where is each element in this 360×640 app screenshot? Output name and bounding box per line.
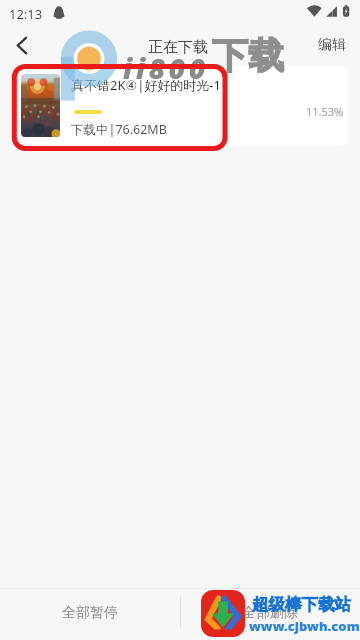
staticText: 编辑 [318,36,346,54]
staticText: www.cjbwh.com [249,617,360,635]
staticText: 12:13 [9,5,43,23]
staticText: 超级棒下载站 [252,594,351,615]
staticText: 下载 [212,33,284,78]
staticText: 真不错2K④|好好的时光-1 [71,76,245,94]
button[interactable]: 真不错2K④|好好的时光-1 [12,66,348,146]
button[interactable]: 全部删除 [180,589,360,637]
button[interactable]: 编辑 [308,26,360,64]
button[interactable]: Back [0,26,44,64]
staticText: 全部删除 [242,604,298,622]
staticText: 正在下载 [148,38,208,57]
staticText: ii800 [123,49,209,87]
staticText: 全部暂停 [62,604,118,622]
staticText: 11.53% [306,104,344,119]
button[interactable]: 全部暂停 [0,589,180,637]
staticText: 下载中|76.62MB [71,121,167,138]
